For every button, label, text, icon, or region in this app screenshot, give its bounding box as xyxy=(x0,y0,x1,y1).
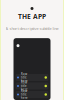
staticText: Row title here xyxy=(21,89,28,100)
staticText: Row title here xyxy=(21,81,28,91)
staticText: Row title here xyxy=(21,72,28,83)
staticText: A short descriptive subtitle line xyxy=(5,26,58,31)
staticText: THE APP xyxy=(18,12,46,21)
